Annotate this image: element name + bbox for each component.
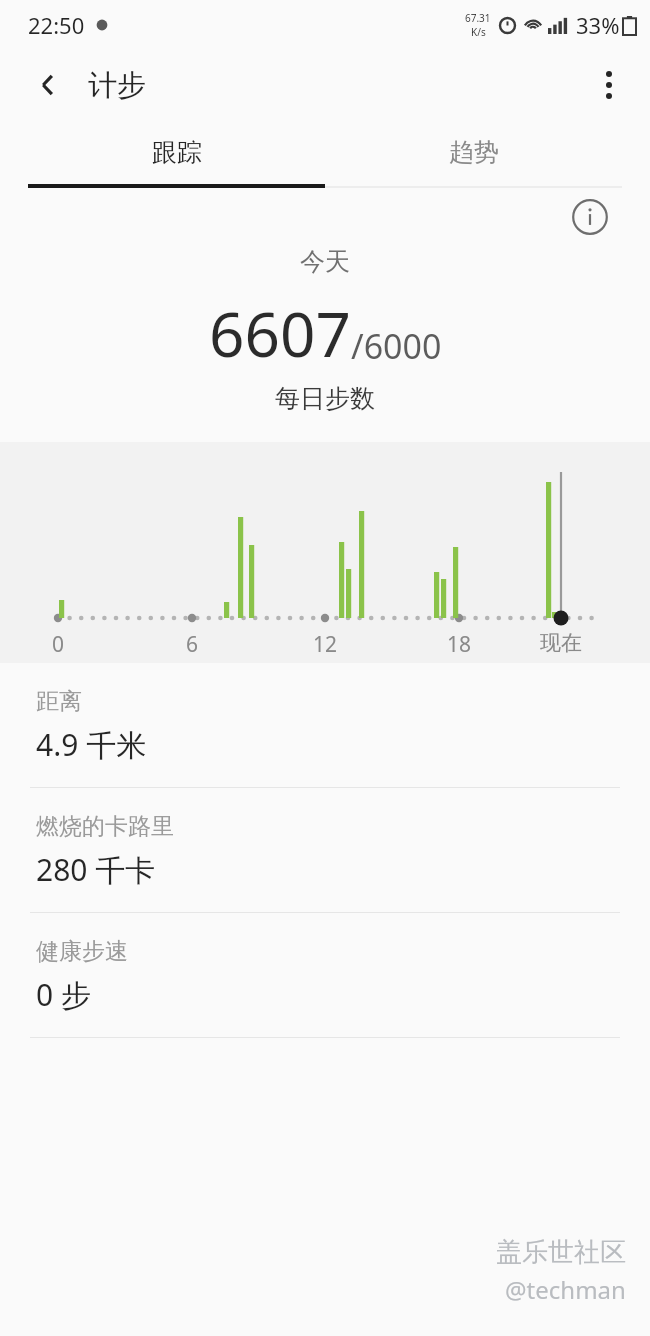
staticText: @techman	[505, 1273, 626, 1306]
button[interactable]: 燃烧的卡路里	[0, 788, 650, 913]
staticText: 280 千卡	[36, 849, 156, 890]
staticText: 22:50	[28, 10, 85, 40]
staticText: 0 步	[36, 974, 91, 1015]
staticText: K/s	[471, 25, 486, 39]
staticText: 燃烧的卡路里	[36, 812, 174, 841]
staticText: 盖乐世社区	[496, 1236, 626, 1269]
button[interactable]: 距离	[0, 663, 650, 788]
staticText: 0	[52, 630, 65, 659]
staticText: 健康步速	[36, 937, 128, 966]
staticText: 6607	[209, 291, 351, 375]
staticText: 每日步数	[0, 383, 650, 414]
staticText: 4.9 千米	[36, 724, 147, 765]
staticText: 现在	[540, 630, 582, 656]
staticText: 67.31	[465, 11, 491, 25]
staticText: 跟踪	[152, 137, 202, 168]
staticText: 计步	[88, 67, 146, 104]
staticText: 趋势	[449, 137, 499, 168]
button[interactable]: 健康步速	[0, 913, 650, 1038]
staticText: 今天	[0, 246, 650, 277]
button[interactable]: 趋势	[325, 120, 622, 184]
button[interactable]: More options	[582, 58, 636, 112]
staticText: 12	[313, 630, 338, 659]
staticText: 18	[447, 630, 472, 659]
staticText: 距离	[36, 687, 82, 716]
staticText: 6	[186, 630, 199, 659]
button[interactable]: Information	[568, 195, 612, 239]
button[interactable]: 跟踪	[28, 120, 325, 184]
staticText: /6000	[351, 323, 442, 369]
button[interactable]: Back	[22, 59, 74, 111]
staticText: 33%	[576, 10, 620, 40]
